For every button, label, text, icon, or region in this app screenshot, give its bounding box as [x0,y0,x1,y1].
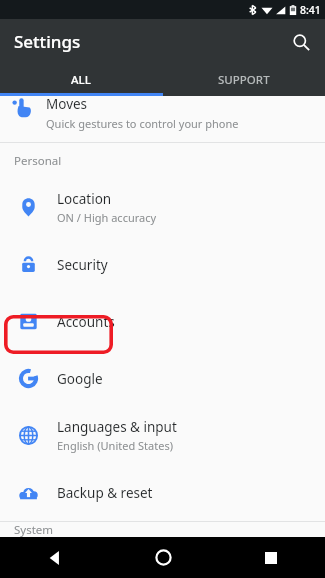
staticText: ON / High accuracy [57,210,157,225]
button[interactable]: Back [0,537,109,578]
staticText: Settings [14,30,81,53]
staticText: 8:41 [300,3,321,17]
staticText: Personal [14,153,62,169]
button[interactable]: SUPPORT [162,64,325,96]
button[interactable]: Backup & reset [0,464,325,521]
staticText: SUPPORT [218,72,270,88]
staticText: Security [57,256,108,274]
button[interactable]: Security [0,236,325,293]
staticText: Languages & input [57,418,177,436]
button[interactable]: Home [109,537,217,578]
button[interactable]: ALL [0,64,162,96]
button[interactable]: Location [0,179,325,236]
button[interactable]: Google [0,350,325,407]
button[interactable]: Moves [0,96,325,142]
staticText: System [14,522,54,537]
button[interactable]: Recent apps [217,537,325,578]
staticText: ALL [71,72,91,88]
staticText: Quick gestures to control your phone [46,116,239,131]
staticText: Accounts [57,313,115,331]
staticText: Google [57,370,103,388]
button[interactable]: Languages & input [0,407,325,464]
button[interactable]: Search [285,26,317,58]
staticText: Backup & reset [57,484,153,502]
button[interactable]: Accounts [0,293,325,350]
staticText: English (United States) [57,438,173,453]
staticText: Location [57,190,112,208]
staticText: Moves [46,95,88,113]
